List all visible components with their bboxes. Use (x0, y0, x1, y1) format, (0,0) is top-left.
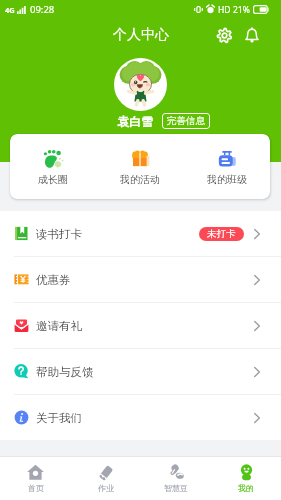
staticText: 首页 (28, 483, 44, 493)
button[interactable]: 智慧豆 (141, 457, 211, 500)
staticText: 4G (5, 5, 15, 15)
staticText: 关于我们 (36, 411, 82, 425)
staticText: HD (218, 4, 231, 16)
staticText: 作业 (98, 483, 114, 493)
button[interactable]: Settings (210, 21, 238, 49)
button[interactable]: Avatar (114, 58, 167, 111)
button[interactable]: 我的 (211, 457, 281, 500)
staticText: 完善信息 (167, 115, 205, 127)
button[interactable]: 完善信息 (162, 113, 210, 129)
staticText: 优惠券 (36, 273, 71, 287)
staticText: 我的班级 (207, 173, 247, 186)
staticText: 成长圈 (38, 173, 68, 186)
staticText: 邀请有礼 (36, 319, 82, 333)
button[interactable]: 优惠券 (0, 257, 281, 302)
button[interactable]: 读书打卡 (0, 211, 281, 256)
staticText: 我的 (238, 483, 254, 493)
button[interactable]: 邀请有礼 (0, 303, 281, 348)
button[interactable]: 帮助与反馈 (0, 349, 281, 394)
button[interactable]: 首页 (0, 457, 71, 500)
button[interactable]: Notifications (238, 21, 266, 49)
staticText: 未打卡 (207, 228, 236, 240)
button[interactable]: 作业 (71, 457, 141, 500)
staticText: 09:28 (30, 3, 55, 16)
staticText: 读书打卡 (36, 227, 82, 241)
staticText: 个人中心 (113, 26, 169, 44)
button[interactable]: 我的活动 (96, 134, 183, 199)
staticText: 我的活动 (120, 173, 160, 186)
staticText: 智慧豆 (164, 483, 188, 493)
staticText: 袁白雪 (117, 114, 153, 129)
staticText: 21% (233, 4, 250, 16)
staticText: 帮助与反馈 (36, 365, 94, 379)
button[interactable]: 成长圈 (10, 134, 96, 199)
button[interactable]: 关于我们 (0, 395, 281, 440)
button[interactable]: 我的班级 (183, 134, 270, 199)
